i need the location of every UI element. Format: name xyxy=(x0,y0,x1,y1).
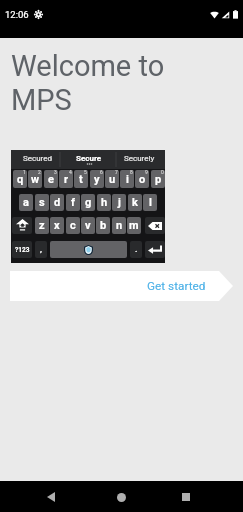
button[interactable]: 5 xyxy=(74,170,88,188)
button[interactable]: m xyxy=(127,217,141,234)
button[interactable]: Enter xyxy=(145,241,165,258)
staticText: n xyxy=(116,219,123,232)
staticText: 3 xyxy=(54,170,57,175)
button[interactable]: 8 xyxy=(120,170,134,188)
staticText: v xyxy=(85,219,91,232)
button[interactable]: Back xyxy=(37,484,65,510)
staticText: p xyxy=(155,173,162,186)
staticText: Welcome to MPS xyxy=(11,49,165,117)
button[interactable]: h xyxy=(97,194,111,211)
button[interactable]: Get started xyxy=(0,271,243,301)
staticText: e xyxy=(48,173,54,186)
button[interactable]: x xyxy=(50,217,64,234)
staticText: , xyxy=(40,245,42,254)
button[interactable]: 6 xyxy=(90,170,104,188)
staticText: 6 xyxy=(100,170,103,175)
button[interactable]: s xyxy=(35,194,49,211)
button[interactable]: l xyxy=(143,194,157,211)
button[interactable]: 1 xyxy=(13,170,27,188)
button[interactable]: ?123 xyxy=(12,241,32,258)
staticText: s xyxy=(39,196,45,209)
button[interactable]: c xyxy=(66,217,80,234)
button[interactable]: j xyxy=(112,194,126,211)
button[interactable]: 9 xyxy=(135,170,149,188)
staticText: y xyxy=(94,173,100,186)
staticText: q xyxy=(17,173,24,186)
staticText: Secured xyxy=(23,154,52,163)
button[interactable]: k xyxy=(128,194,142,211)
staticText: 0 xyxy=(161,170,164,175)
staticText: j xyxy=(118,196,121,209)
button[interactable]: Recents xyxy=(172,484,200,510)
button[interactable]: Home xyxy=(107,484,135,510)
staticText: Securely xyxy=(124,154,155,163)
button[interactable]: d xyxy=(50,194,64,211)
staticText: k xyxy=(132,196,138,209)
button[interactable]: g xyxy=(81,194,95,211)
staticText: b xyxy=(100,219,107,232)
staticText: a xyxy=(23,196,29,209)
staticText: 2 xyxy=(38,170,41,175)
staticText: f xyxy=(71,196,75,209)
staticText: 7 xyxy=(115,170,118,175)
button[interactable]: b xyxy=(96,217,110,234)
staticText: w xyxy=(31,173,40,186)
button[interactable]: Space xyxy=(50,241,127,258)
staticText: 9 xyxy=(145,170,148,175)
button[interactable]: f xyxy=(66,194,80,211)
button[interactable]: 2 xyxy=(28,170,42,188)
button[interactable]: 7 xyxy=(105,170,119,188)
button[interactable]: n xyxy=(112,217,126,234)
staticText: m xyxy=(129,219,139,232)
button[interactable]: a xyxy=(19,194,33,211)
button[interactable]: Shift xyxy=(12,217,32,234)
staticText: . xyxy=(135,245,138,254)
staticText: o xyxy=(139,173,146,186)
staticText: r xyxy=(64,173,69,186)
button[interactable]: Backspace xyxy=(145,217,165,234)
staticText: c xyxy=(70,219,76,232)
button[interactable]: . xyxy=(130,241,142,258)
staticText: 8 xyxy=(130,170,133,175)
staticText: ?123 xyxy=(15,246,30,254)
staticText: 12:06 xyxy=(5,9,29,20)
staticText: d xyxy=(54,196,61,209)
staticText: 5 xyxy=(84,170,87,175)
button[interactable]: v xyxy=(81,217,95,234)
button[interactable]: z xyxy=(35,217,49,234)
button[interactable]: 3 xyxy=(44,170,58,188)
button[interactable]: 4 xyxy=(59,170,73,188)
staticText: t xyxy=(79,173,83,186)
staticText: Secure xyxy=(76,154,102,163)
staticText: u xyxy=(109,173,116,186)
staticText: i xyxy=(126,173,129,186)
staticText: h xyxy=(101,196,108,209)
button[interactable]: , xyxy=(35,241,47,258)
staticText: 1 xyxy=(23,170,26,175)
staticText: 4 xyxy=(69,170,72,175)
button[interactable]: 0 xyxy=(151,170,165,188)
staticText: z xyxy=(39,219,45,232)
staticText: l xyxy=(149,196,152,209)
staticText: g xyxy=(85,196,92,209)
staticText: Get started xyxy=(147,279,206,293)
staticText: x xyxy=(54,219,60,232)
